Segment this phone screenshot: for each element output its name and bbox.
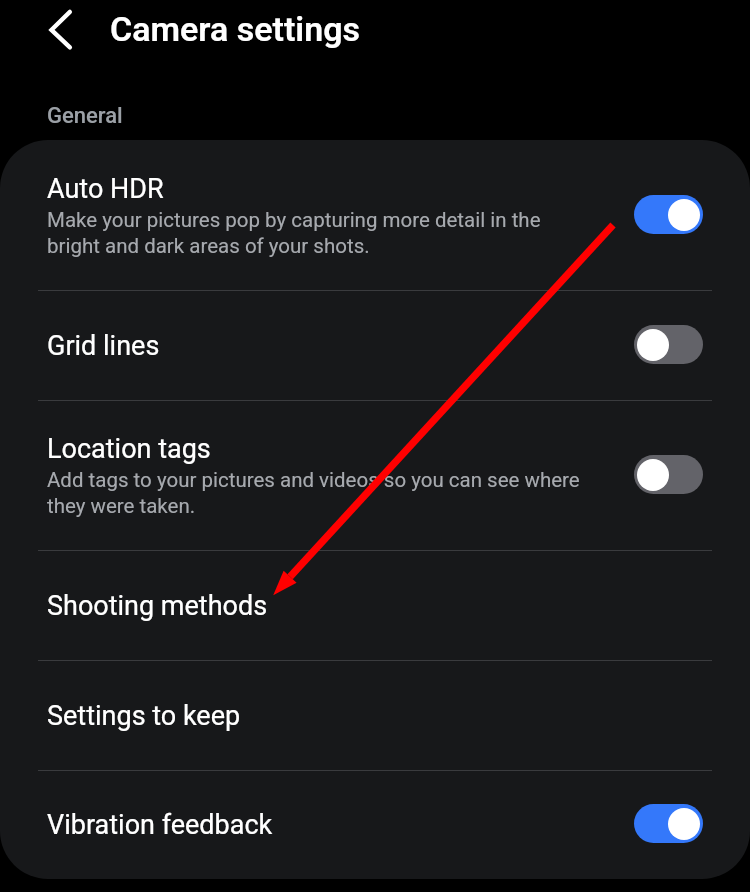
button[interactable]: Switch off	[634, 325, 703, 364]
button[interactable]: Switch on	[634, 195, 703, 234]
staticText: Shooting methods	[47, 590, 268, 621]
button[interactable]: Auto HDR	[0, 140, 750, 290]
button[interactable]: Shooting methods	[0, 550, 750, 660]
button[interactable]: Vibration feedback	[0, 770, 750, 879]
staticText: Location tags	[47, 433, 211, 464]
button[interactable]: Location tags	[0, 400, 750, 550]
staticText: General	[47, 102, 123, 128]
button[interactable]: Grid lines	[0, 290, 750, 400]
button[interactable]: Settings to keep	[0, 660, 750, 770]
staticText: Camera settings	[110, 9, 360, 49]
button[interactable]: Switch off	[634, 455, 703, 494]
button[interactable]: Switch on	[634, 804, 703, 843]
staticText: Grid lines	[47, 330, 160, 361]
staticText: Add tags to your pictures and videos so …	[47, 466, 589, 518]
staticText: Settings to keep	[47, 700, 241, 731]
button[interactable]: Back	[31, 0, 91, 60]
staticText: Make your pictures pop by capturing more…	[47, 206, 589, 258]
staticText: Vibration feedback	[47, 809, 273, 840]
staticText: Auto HDR	[47, 173, 164, 204]
